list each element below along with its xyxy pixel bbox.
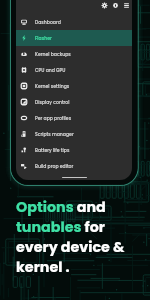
staticText: tunables for — [16, 217, 105, 237]
button[interactable]: Kernel settings — [16, 78, 132, 94]
staticText: Options and — [16, 197, 106, 217]
staticText: Flasher — [35, 35, 52, 41]
button[interactable]: Build prop editor — [16, 158, 132, 174]
staticText: Per app profiles — [35, 115, 72, 121]
staticText: Battery life tips — [35, 147, 70, 153]
button[interactable]: Flasher — [16, 30, 132, 46]
staticText: CPU and GPU — [35, 67, 66, 73]
staticText: Build prop editor — [35, 163, 74, 169]
button[interactable]: Kernel backups — [16, 46, 132, 62]
button[interactable]: Dashboard — [16, 14, 132, 30]
button[interactable]: Display control — [16, 94, 132, 110]
button[interactable]: Settings — [99, 0, 109, 10]
staticText: every device & — [16, 237, 125, 257]
button[interactable]: Scripts manager — [16, 126, 132, 142]
staticText: Display control — [35, 99, 70, 105]
staticText: Kernel backups — [35, 51, 71, 57]
button[interactable]: Info — [110, 0, 120, 10]
button[interactable]: More options — [121, 0, 131, 10]
button[interactable]: Battery life tips — [16, 142, 132, 158]
staticText: Scripts manager — [35, 131, 74, 137]
button[interactable]: Per app profiles — [16, 110, 132, 126]
staticText: Dashboard — [35, 19, 61, 25]
staticText: kernel . — [16, 257, 70, 277]
staticText: Kernel settings — [35, 83, 70, 89]
button[interactable]: CPU and GPU — [16, 62, 132, 78]
